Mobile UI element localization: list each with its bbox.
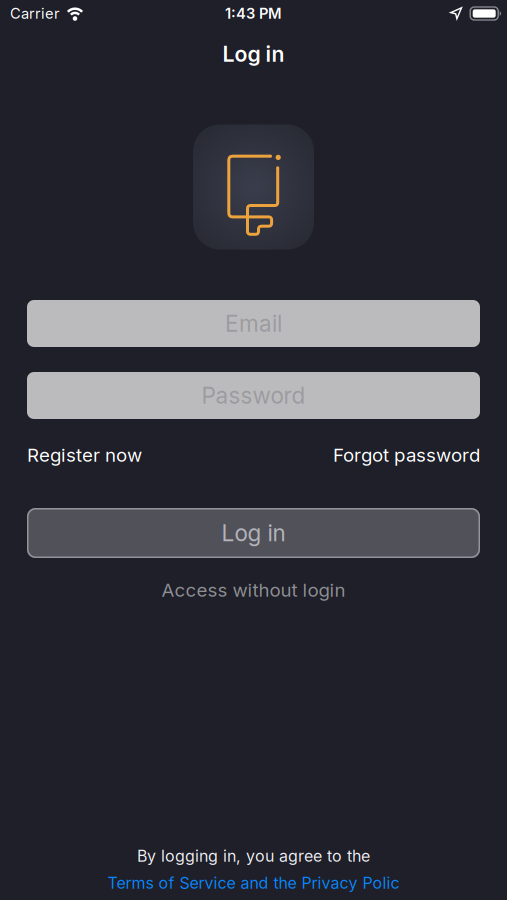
staticText: Log in — [221, 520, 285, 546]
button[interactable]: Forgot password — [333, 444, 480, 466]
staticText: Terms of Service and the Privacy Polic — [107, 874, 399, 892]
staticText: 1:43 PM — [225, 5, 282, 22]
button[interactable]: Register now — [27, 444, 142, 466]
staticText: Carrier — [10, 5, 60, 22]
staticText: By logging in, you agree to the — [137, 847, 370, 865]
button[interactable]: Password — [27, 372, 480, 419]
button[interactable]: Access without login — [161, 578, 345, 602]
staticText: Register now — [27, 444, 142, 466]
staticText: Password — [201, 382, 305, 409]
staticText: Log in — [222, 41, 284, 67]
staticText: Email — [225, 310, 282, 337]
staticText: Access without login — [161, 579, 345, 601]
button[interactable]: Log in — [27, 508, 480, 558]
button[interactable]: Terms of Service and the Privacy Polic — [107, 873, 399, 893]
button[interactable]: Email — [27, 300, 480, 347]
staticText: Forgot password — [333, 444, 480, 466]
